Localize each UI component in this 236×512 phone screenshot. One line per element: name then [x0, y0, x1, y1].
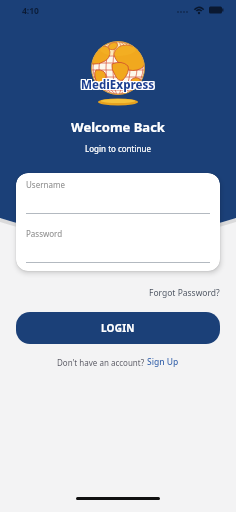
staticText: MediExpress	[80, 77, 154, 93]
staticText: LOGIN	[101, 321, 135, 335]
staticText: Login to continue	[0, 143, 236, 154]
staticText: Password	[26, 228, 63, 239]
staticText: Username	[26, 179, 65, 190]
staticText: MediExpress	[80, 78, 154, 94]
button[interactable]: Username	[26, 175, 210, 214]
staticText: MediExpress	[82, 78, 156, 94]
button[interactable]: Forgot Password?	[149, 287, 220, 299]
button[interactable]: Sign Up	[147, 356, 179, 368]
staticText: MediExpress	[81, 76, 155, 92]
staticText: Don't have an account?	[57, 357, 147, 368]
staticText: MediExpress	[81, 77, 155, 93]
button[interactable]: LOGIN	[16, 312, 220, 344]
staticText: MediExpress	[82, 76, 156, 92]
button[interactable]: Password	[26, 224, 210, 263]
staticText: MediExpress	[81, 78, 155, 94]
staticText: 4:10	[22, 5, 39, 17]
staticText: Welcome Back	[0, 118, 236, 136]
staticText: MediExpress	[80, 76, 154, 92]
staticText: MediExpress	[82, 77, 156, 93]
